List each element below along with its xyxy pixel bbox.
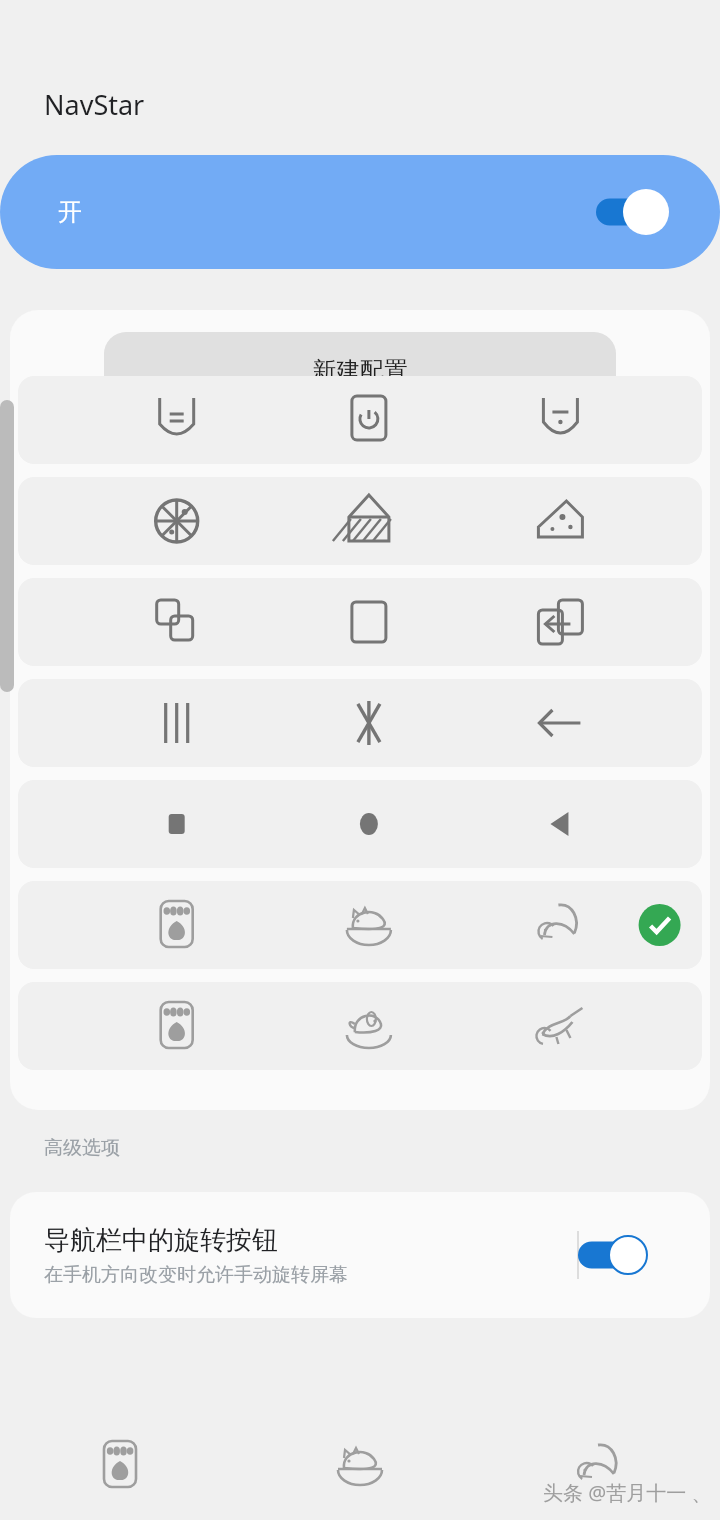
button[interactable] — [18, 477, 702, 565]
staticText: 新建配置 — [312, 356, 408, 386]
button[interactable] — [18, 376, 702, 464]
staticText: NavStar — [44, 86, 145, 123]
staticText: 开 — [58, 197, 82, 227]
button[interactable] — [18, 982, 702, 1070]
button[interactable]: Rotation button switch on — [578, 1235, 650, 1275]
button[interactable] — [18, 780, 702, 868]
button[interactable]: Sleeping cat — [240, 1410, 480, 1520]
staticText: 高级选项 — [44, 1136, 120, 1160]
button[interactable] — [18, 881, 702, 969]
button[interactable]: 新建配置 — [104, 332, 616, 410]
button[interactable] — [18, 578, 702, 666]
button[interactable] — [18, 679, 702, 767]
button[interactable]: Paw — [0, 1410, 240, 1520]
staticText: 头条 @苦月十一 、 — [543, 1479, 712, 1506]
button[interactable]: Master switch on — [596, 192, 668, 232]
button[interactable]: 开 — [0, 155, 720, 269]
staticText: 导航栏中的旋转按钮 — [44, 1224, 278, 1257]
button[interactable]: 导航栏中的旋转按钮 — [10, 1192, 710, 1318]
staticText: 在手机方向改变时允许手动旋转屏幕 — [44, 1263, 348, 1287]
button[interactable]: Stretching cat — [480, 1410, 720, 1520]
